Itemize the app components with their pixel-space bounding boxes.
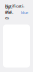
staticText: Updates — [5, 4, 13, 20]
staticText: Notifications — [5, 3, 24, 14]
staticText: blue — [21, 10, 28, 15]
